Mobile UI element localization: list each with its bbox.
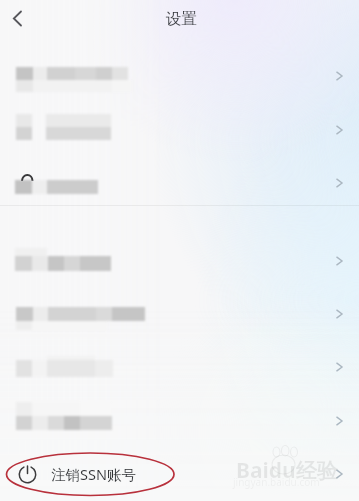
button[interactable] [0, 235, 359, 288]
button[interactable] [0, 157, 359, 210]
button[interactable] [0, 288, 359, 341]
button[interactable] [0, 104, 359, 157]
staticText: 注销SSN账号 [51, 464, 136, 484]
button[interactable] [0, 50, 359, 103]
staticText: 设置 [166, 9, 197, 29]
staticText: Baidu经验 [236, 456, 338, 485]
button[interactable]: Back [0, 0, 44, 40]
button[interactable] [0, 395, 359, 448]
button[interactable] [0, 341, 359, 394]
button[interactable] [0, 448, 359, 496]
staticText: jingyan.baidu.com [233, 475, 320, 489]
